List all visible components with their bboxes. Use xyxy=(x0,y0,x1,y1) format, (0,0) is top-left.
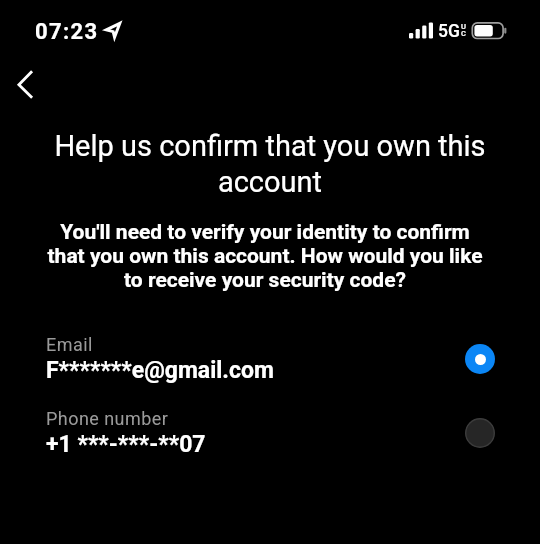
staticText: 07:23 xyxy=(35,19,99,45)
staticText: F*******e@gmail.com xyxy=(46,357,274,384)
staticText: C xyxy=(461,29,466,38)
staticText: You'll need to verify your identity to c… xyxy=(41,220,489,292)
button[interactable]: Email xyxy=(0,328,540,390)
staticText: Help us confirm that you own this accoun… xyxy=(46,129,494,199)
staticText: +1 ***-***-**07 xyxy=(46,431,206,458)
staticText: Email xyxy=(46,334,93,355)
staticText: U xyxy=(461,22,466,31)
staticText: Phone number xyxy=(46,408,169,429)
button[interactable]: Back xyxy=(0,57,54,111)
button[interactable]: Phone number xyxy=(0,402,540,464)
staticText: 5G xyxy=(438,21,460,42)
